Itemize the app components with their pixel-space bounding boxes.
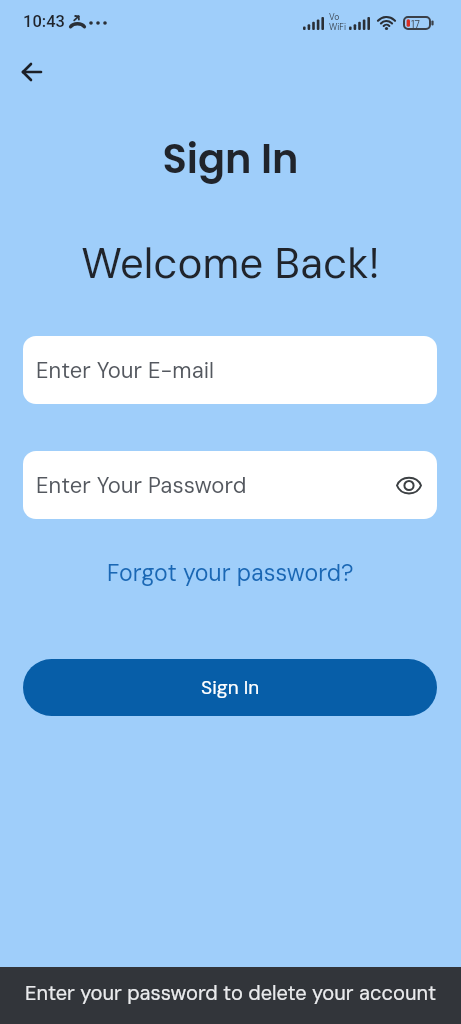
button[interactable]: Forgot your password? bbox=[107, 558, 354, 588]
button[interactable] bbox=[14, 54, 50, 90]
button[interactable] bbox=[395, 471, 423, 499]
staticText: Sign In bbox=[0, 131, 461, 187]
button[interactable]: Enter Your E-mail bbox=[23, 336, 437, 404]
staticText: 10:43 bbox=[23, 12, 65, 31]
staticText: Vo WiFi bbox=[329, 12, 346, 32]
staticText: Enter Your Password bbox=[36, 471, 247, 500]
staticText: Enter your password to delete your accou… bbox=[25, 980, 437, 1006]
staticText: Enter Your E-mail bbox=[36, 356, 215, 385]
staticText: Welcome Back! bbox=[0, 236, 461, 291]
button[interactable]: Sign In bbox=[23, 659, 437, 716]
staticText: Sign In bbox=[201, 675, 260, 700]
staticText: 17 bbox=[411, 18, 420, 31]
button[interactable]: Enter Your Password bbox=[23, 451, 437, 519]
